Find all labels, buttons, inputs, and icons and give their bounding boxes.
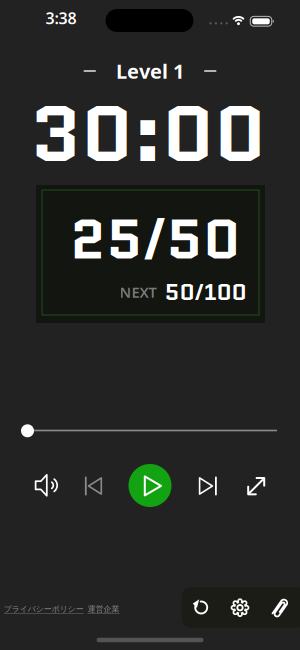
button[interactable]: Sound [26, 465, 66, 505]
staticText: 運営企業 [87, 604, 119, 614]
button[interactable]: Level 1 [83, 58, 216, 84]
staticText: プライバシーポリシー [4, 604, 84, 614]
staticText: 30:00 [30, 79, 266, 189]
button[interactable]: Full screen [236, 466, 276, 506]
button[interactable]: 運営企業 [87, 604, 119, 614]
staticText: 3:38 [45, 7, 76, 29]
button[interactable]: Play [128, 464, 171, 507]
button[interactable]: Attachment [262, 587, 296, 627]
button[interactable]: Previous level [73, 466, 113, 506]
button[interactable]: Reset [183, 587, 217, 627]
staticText: NEXT [119, 282, 156, 302]
button[interactable]: プライバシーポリシー [4, 604, 84, 614]
staticText: Level 1 [116, 58, 184, 84]
button[interactable]: Seek [21, 415, 277, 445]
staticText: 25/50 [70, 199, 241, 279]
staticText: 50/100 [164, 276, 246, 308]
button[interactable]: Next level [187, 466, 227, 506]
button[interactable]: Settings [222, 587, 256, 627]
